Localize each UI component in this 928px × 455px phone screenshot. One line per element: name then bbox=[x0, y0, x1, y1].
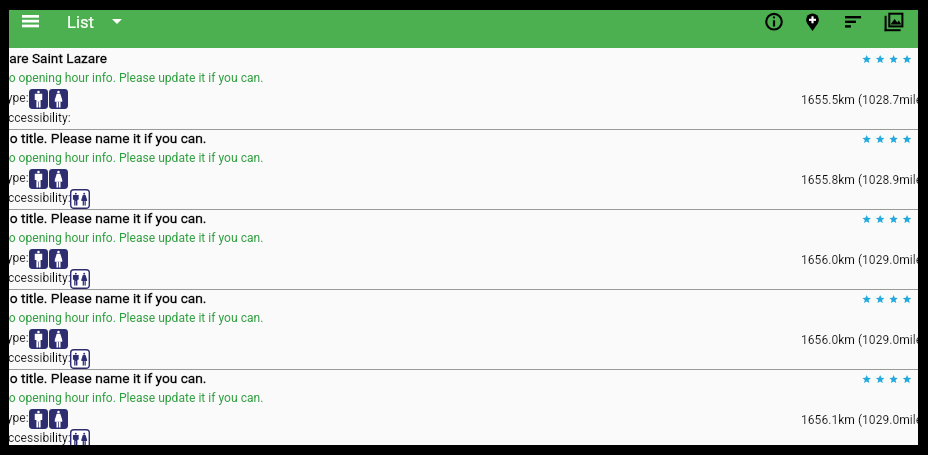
staticText: Gare Saint Lazare bbox=[9, 50, 108, 66]
button[interactable]: Info bbox=[759, 10, 791, 36]
staticText: 1655.5km (1028.7miles) bbox=[801, 93, 918, 107]
staticText: No title. Please name it if you can. bbox=[9, 130, 207, 146]
staticText: Accessibility: bbox=[9, 191, 71, 205]
button[interactable]: Open navigation drawer bbox=[12, 10, 50, 36]
button[interactable]: No title. Please name it if you can. bbox=[9, 290, 918, 369]
staticText: 1655.8km (1028.9miles) bbox=[801, 173, 918, 187]
staticText: Accessibility: bbox=[9, 271, 71, 285]
button[interactable]: Sort bbox=[837, 10, 869, 36]
staticText: Type: bbox=[9, 171, 29, 185]
button[interactable]: Photo library bbox=[875, 10, 907, 36]
staticText: No opening hour info. Please update it i… bbox=[9, 71, 264, 85]
button[interactable]: No title. Please name it if you can. bbox=[9, 210, 918, 289]
staticText: Type: bbox=[9, 251, 29, 265]
staticText: No opening hour info. Please update it i… bbox=[9, 311, 264, 325]
staticText: Type: bbox=[9, 91, 29, 105]
staticText: Accessibility: bbox=[9, 431, 71, 445]
staticText: 1656.1km (1029.0miles) bbox=[801, 413, 918, 427]
staticText: No opening hour info. Please update it i… bbox=[9, 391, 264, 405]
button[interactable]: No title. Please name it if you can. bbox=[9, 130, 918, 209]
button[interactable]: Add location bbox=[798, 10, 830, 36]
staticText: Accessibility: bbox=[9, 351, 71, 365]
staticText: Accessibility: bbox=[9, 111, 71, 125]
staticText: 1656.0km (1029.0miles) bbox=[801, 253, 918, 267]
staticText: No title. Please name it if you can. bbox=[9, 370, 207, 386]
button[interactable]: List bbox=[64, 10, 128, 38]
staticText: Type: bbox=[9, 331, 29, 345]
staticText: Type: bbox=[9, 411, 29, 425]
button[interactable]: Gare Saint Lazare bbox=[9, 50, 918, 129]
staticText: No opening hour info. Please update it i… bbox=[9, 231, 264, 245]
staticText: List bbox=[67, 13, 94, 32]
staticText: No opening hour info. Please update it i… bbox=[9, 151, 264, 165]
staticText: No title. Please name it if you can. bbox=[9, 290, 207, 306]
button[interactable]: No title. Please name it if you can. bbox=[9, 370, 918, 445]
staticText: 1656.0km (1029.0miles) bbox=[801, 333, 918, 347]
staticText: No title. Please name it if you can. bbox=[9, 210, 207, 226]
